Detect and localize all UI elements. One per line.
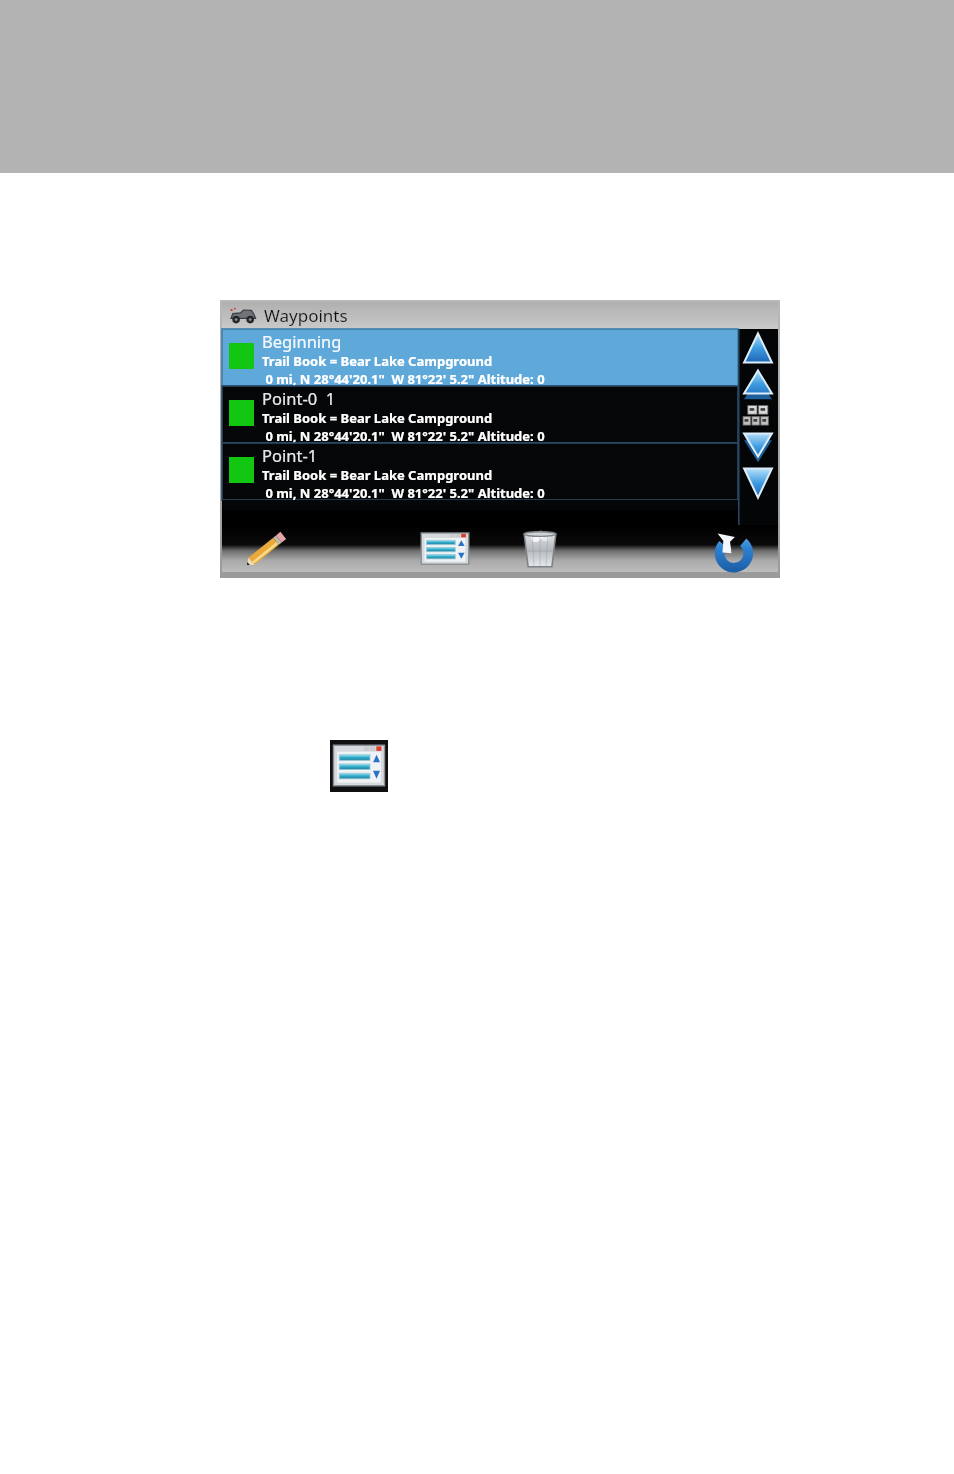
staticText: 0 mi, N 28°44'20.1" W 81°22' 5.2" Altitu… (262, 427, 545, 444)
button[interactable]: Point-1 (222, 443, 738, 500)
staticText: 0 mi, N 28°44'20.1" W 81°22' 5.2" Altitu… (262, 370, 545, 387)
staticText: Trail Book = Bear Lake Campground (262, 352, 493, 370)
staticText: 0 mi, N 28°44'20.1" W 81°22' 5.2" Altitu… (262, 484, 545, 501)
staticText: Trail Book = Bear Lake Campground (262, 466, 493, 484)
staticText: Beginning (262, 330, 342, 352)
button[interactable]: Waypoints (222, 302, 778, 329)
button[interactable]: Back (709, 526, 757, 570)
staticText: Point-0 1 (262, 387, 336, 409)
button[interactable]: Beginning (222, 329, 738, 386)
button[interactable]: Delete waypoint (518, 528, 562, 570)
button[interactable]: Scroll up (741, 331, 775, 365)
staticText: Trail Book = Bear Lake Campground (262, 409, 493, 427)
staticText: Waypoints (264, 304, 348, 327)
button[interactable]: Keyboard (741, 403, 775, 429)
button[interactable]: Point-0 1 (222, 386, 738, 443)
button[interactable]: Waypoint list (330, 740, 388, 792)
staticText: Point-1 (262, 444, 318, 466)
button[interactable]: Page up (741, 367, 775, 401)
button[interactable]: Scroll down (741, 466, 775, 500)
button[interactable]: Edit waypoint (242, 529, 290, 569)
button[interactable]: Waypoint list options (418, 529, 472, 569)
button[interactable]: Page down (741, 430, 775, 464)
